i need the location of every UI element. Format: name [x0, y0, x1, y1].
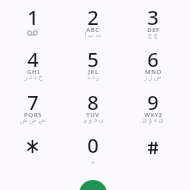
button[interactable]: 7	[4, 92, 62, 130]
button[interactable]: *	[4, 135, 62, 173]
staticText: ر ذ د	[87, 73, 100, 81]
staticText: 6	[147, 46, 159, 73]
staticText: +	[91, 159, 95, 167]
staticText: 1	[27, 4, 39, 31]
staticText: 2	[87, 4, 99, 31]
staticText: ت ب ا	[84, 31, 102, 39]
button[interactable]: 8	[64, 92, 122, 130]
staticText: 5	[87, 46, 99, 73]
button[interactable]: 4	[4, 49, 62, 87]
button[interactable]: #	[124, 135, 182, 173]
staticText: GHI	[27, 67, 40, 75]
staticText: 9	[147, 89, 159, 116]
staticText: 7	[27, 89, 39, 116]
staticText: PQRS	[24, 110, 42, 118]
button[interactable]: 0	[64, 135, 122, 173]
button[interactable]: 3	[124, 7, 182, 45]
staticText: ض ص ش	[20, 116, 46, 124]
staticText: TUV	[86, 110, 100, 118]
button[interactable]: 1	[4, 7, 62, 45]
button[interactable]: 6	[124, 49, 182, 87]
staticText: 4	[27, 46, 39, 73]
staticText: س ژ ز	[144, 73, 162, 81]
staticText: JKL	[88, 67, 99, 75]
staticText: 3	[147, 4, 159, 31]
staticText: WXYZ	[144, 110, 163, 118]
staticText: ى ء ؤ ئ	[142, 116, 164, 124]
button[interactable]: 5	[64, 49, 122, 87]
staticText: ABC	[86, 25, 100, 33]
staticText: 8	[87, 89, 99, 116]
button[interactable]: 9	[124, 92, 182, 130]
staticText: ج ح	[148, 31, 158, 39]
staticText: خ د ذ ر	[24, 73, 43, 81]
staticText: ن ه و ي	[82, 116, 104, 124]
button[interactable]: 2	[64, 7, 122, 45]
staticText: 0	[87, 132, 99, 159]
staticText: DEF	[147, 25, 160, 33]
staticText: MNO	[145, 67, 162, 75]
button[interactable]: Call	[79, 180, 107, 190]
